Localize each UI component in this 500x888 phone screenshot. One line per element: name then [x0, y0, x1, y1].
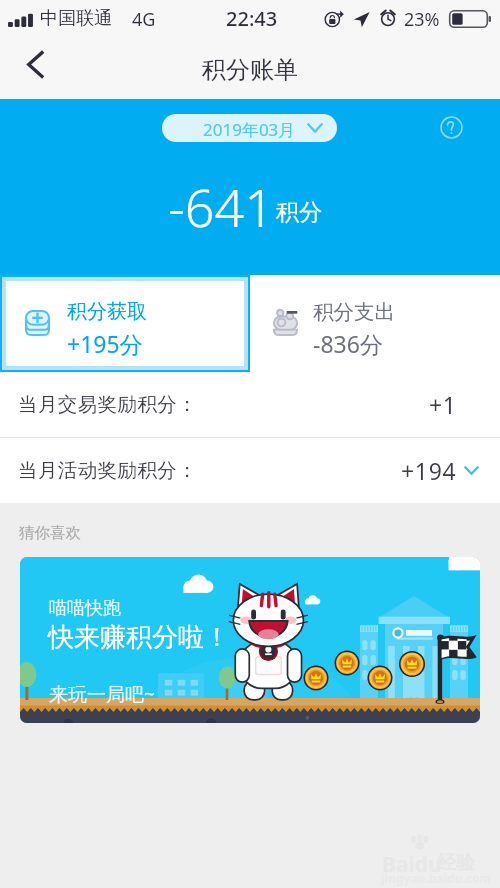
button[interactable]	[162, 114, 337, 142]
staticText: 当月活动奖励积分：	[18, 458, 198, 483]
button[interactable]: 当月活动奖励积分：	[0, 438, 500, 503]
button[interactable]	[6, 281, 244, 366]
button[interactable]: Help	[440, 116, 463, 139]
staticText: 快来赚积分啦！	[48, 621, 230, 654]
button[interactable]: 当月交易奖励积分：	[0, 372, 500, 437]
staticText: +195分	[67, 328, 143, 359]
staticText: 经验	[437, 851, 475, 875]
staticText: -836分	[313, 328, 383, 359]
staticText: 2019年03月	[203, 118, 296, 141]
staticText: 4G	[132, 7, 156, 32]
staticText: 积分获取	[67, 299, 147, 324]
staticText: 积分账单	[202, 55, 298, 85]
staticText: 猜你喜欢	[19, 523, 81, 543]
staticText: 来玩一局吧~	[49, 681, 155, 707]
staticText: 23%	[404, 7, 440, 32]
staticText: 积分支出	[313, 299, 395, 325]
button[interactable]	[250, 275, 500, 372]
staticText: 22:43	[226, 5, 278, 32]
staticText: +194	[401, 455, 457, 486]
staticText: 积分	[276, 198, 322, 227]
button[interactable]: 喵喵快跑	[20, 557, 480, 723]
staticText: -641	[168, 171, 274, 242]
staticText: 当月交易奖励积分：	[18, 392, 198, 417]
staticText: 喵喵快跑	[49, 597, 121, 620]
staticText: 中国联通	[40, 7, 112, 30]
button[interactable]: Back	[7, 42, 63, 98]
staticText: +1	[429, 389, 457, 420]
